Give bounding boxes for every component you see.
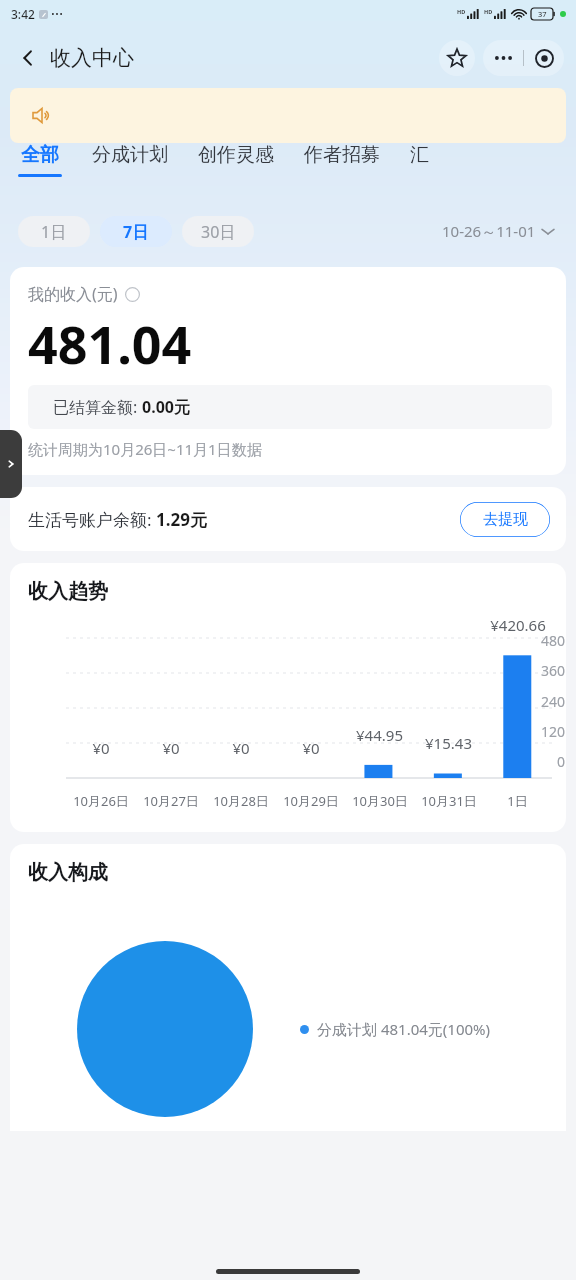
staticText: 已结算金额: — [53, 396, 142, 418]
staticText: 分成计划 481.04元(100%) — [317, 1019, 491, 1039]
staticText: 360 — [541, 661, 566, 680]
button[interactable]: Favorite — [439, 40, 475, 76]
staticText: 全部 — [21, 143, 59, 167]
staticText: 1.29元 — [156, 508, 207, 531]
staticText: 10-26～11-01 — [442, 221, 536, 241]
staticText: 0.00元 — [142, 396, 190, 418]
staticText: 收入中心 — [50, 45, 134, 71]
button[interactable]: 作者招募 — [304, 143, 380, 177]
staticText: 收入构成 — [28, 860, 108, 885]
button[interactable]: 10-26～11-01 — [438, 217, 558, 245]
button[interactable]: 去提现 — [460, 502, 550, 537]
staticText: 481.04 — [28, 308, 192, 379]
staticText: 120 — [541, 722, 566, 741]
button[interactable]: 30日 — [182, 216, 254, 247]
staticText: 10月30日 — [352, 792, 408, 810]
button[interactable]: 汇 — [410, 148, 429, 172]
button[interactable]: Back — [8, 38, 48, 78]
staticText: 汇 — [410, 143, 429, 167]
button[interactable]: 收入构成 — [10, 844, 566, 1131]
button[interactable]: 全部 — [18, 143, 62, 177]
staticText: 3:42 — [11, 6, 35, 22]
staticText: HD — [457, 8, 466, 15]
staticText: ¥420.66 — [490, 615, 546, 635]
staticText: 统计周期为10月26日~11月1日数据 — [28, 439, 262, 459]
staticText: 7日 — [123, 221, 149, 243]
button[interactable]: 收入趋势 — [10, 563, 566, 832]
staticText: 10月31日 — [421, 792, 477, 810]
button[interactable]: 我的收入(元) — [10, 267, 566, 475]
staticText: ¥44.95 — [356, 725, 403, 745]
staticText: 收入趋势 — [28, 579, 108, 604]
staticText: 我的收入(元) — [28, 283, 118, 305]
button[interactable] — [10, 88, 566, 143]
staticText: 37 — [538, 9, 547, 19]
staticText: 分成计划 — [92, 143, 168, 167]
staticText: 30日 — [201, 221, 236, 243]
button[interactable]: 分成计划 — [92, 143, 168, 177]
staticText: ¥0 — [232, 738, 250, 758]
staticText: ¥0 — [92, 738, 110, 758]
button[interactable]: 7日 — [100, 216, 172, 247]
staticText: 作者招募 — [304, 143, 380, 167]
button[interactable]: 1日 — [18, 216, 90, 247]
staticText: 1日 — [41, 221, 67, 243]
button[interactable]: Close — [524, 40, 564, 76]
staticText: ¥0 — [162, 738, 180, 758]
staticText: 240 — [541, 692, 566, 711]
staticText: 10月28日 — [213, 792, 269, 810]
staticText: 10月29日 — [283, 792, 339, 810]
button[interactable]: 创作灵感 — [198, 143, 274, 177]
staticText: 1日 — [507, 792, 528, 810]
staticText: 480 — [541, 631, 566, 650]
button[interactable]: More options — [483, 40, 523, 76]
staticText: 10月26日 — [73, 792, 129, 810]
staticText: 创作灵感 — [198, 143, 274, 167]
staticText: ¥15.43 — [425, 733, 472, 753]
staticText: 去提现 — [483, 510, 528, 529]
staticText: 生活号账户余额: — [28, 508, 156, 531]
staticText: 10月27日 — [143, 792, 199, 810]
staticText: 0 — [557, 752, 566, 771]
button[interactable]: Expand side panel — [0, 430, 22, 498]
staticText: ¥0 — [302, 738, 320, 758]
staticText: HD — [484, 8, 493, 15]
